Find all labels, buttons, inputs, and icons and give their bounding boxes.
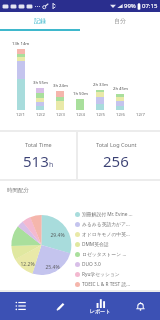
staticText: 記録 xyxy=(34,17,46,25)
button[interactable]: List xyxy=(0,292,40,320)
staticText: 12/7 xyxy=(136,112,145,118)
staticText: h xyxy=(49,160,54,170)
staticText: 12/2 xyxy=(36,112,45,118)
staticText: Ryu学セッション xyxy=(82,271,120,278)
button[interactable]: Ryu学セッション xyxy=(75,269,160,279)
staticText: Total Log Count xyxy=(96,141,137,148)
staticText: Total Time xyxy=(25,141,52,148)
staticText: 時間配分 xyxy=(7,187,29,194)
staticText: 2h 33m xyxy=(93,82,108,88)
staticText: レポート xyxy=(90,308,111,314)
staticText: 3h 55m xyxy=(33,80,48,86)
button[interactable]: 記録 xyxy=(0,12,80,29)
staticText: 別冊解説付 Mr. Evine ... xyxy=(82,211,133,218)
staticText: 256 xyxy=(103,151,129,171)
button[interactable]: ロゼッタストーン ... xyxy=(75,249,160,259)
staticText: 3h 24m xyxy=(53,83,68,89)
staticText: 99% xyxy=(124,2,136,10)
button[interactable]: オドロキモノの中英... xyxy=(75,229,160,239)
staticText: 12.2% xyxy=(20,261,35,268)
staticText: 12/6 xyxy=(116,112,125,118)
staticText: オドロキモノの中英... xyxy=(82,231,130,238)
staticText: TOEIC L & R TEST 読... xyxy=(82,281,131,288)
staticText: 07:15 xyxy=(142,2,158,10)
staticText: DMM英会話 xyxy=(82,241,109,248)
button[interactable]: 自分 xyxy=(80,12,160,29)
button[interactable]: Notifications xyxy=(120,292,160,320)
button[interactable]: Edit xyxy=(40,292,80,320)
staticText: 12/5 xyxy=(96,112,105,118)
button[interactable]: DMM英会話 xyxy=(75,239,160,249)
staticText: 2h 45m xyxy=(113,86,128,92)
button[interactable]: 別冊解説付 Mr. Evine ... xyxy=(75,209,160,219)
staticText: 自分 xyxy=(114,17,126,25)
button[interactable]: TOEIC L & R TEST 読... xyxy=(75,279,160,289)
staticText: 12/1 xyxy=(16,112,25,118)
staticText: DUO 3.0 xyxy=(82,261,101,268)
staticText: 12/3 xyxy=(56,112,65,118)
button[interactable]: レポート xyxy=(80,292,120,320)
staticText: 25.4% xyxy=(45,264,60,271)
button[interactable]: DUO 3.0 xyxy=(75,259,160,269)
button[interactable]: みるみる英語力がア... xyxy=(75,219,160,229)
staticText: 29.4% xyxy=(50,232,65,239)
staticText: ロゼッタストーン ... xyxy=(82,251,127,258)
staticText: 513 xyxy=(23,151,49,171)
staticText: 1h 50m xyxy=(73,91,88,97)
staticText: 12/4 xyxy=(76,112,85,118)
staticText: みるみる英語力がア... xyxy=(82,221,130,228)
staticText: 13h 14m xyxy=(12,41,30,47)
